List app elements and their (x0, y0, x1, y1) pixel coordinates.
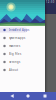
button[interactable]: Back (7, 92, 16, 100)
staticText: Settings (9, 60, 20, 64)
staticText: Big Files (9, 52, 21, 56)
button[interactable]: Big Files (0, 50, 45, 58)
button[interactable]: Recent apps (40, 92, 49, 100)
button[interactable]: Installed Apps (0, 26, 45, 34)
button[interactable]: Settings (0, 58, 45, 66)
staticText: 12:30 (46, 0, 55, 4)
staticText: About (9, 68, 18, 72)
staticText: Installed Apps (9, 28, 29, 32)
button[interactable]: Favorites (0, 42, 45, 50)
staticText: System Apps (9, 36, 25, 40)
button[interactable]: About (0, 66, 45, 74)
button[interactable]: Home (23, 92, 32, 100)
button[interactable]: System Apps (0, 34, 45, 42)
staticText: Favorites (9, 44, 20, 48)
